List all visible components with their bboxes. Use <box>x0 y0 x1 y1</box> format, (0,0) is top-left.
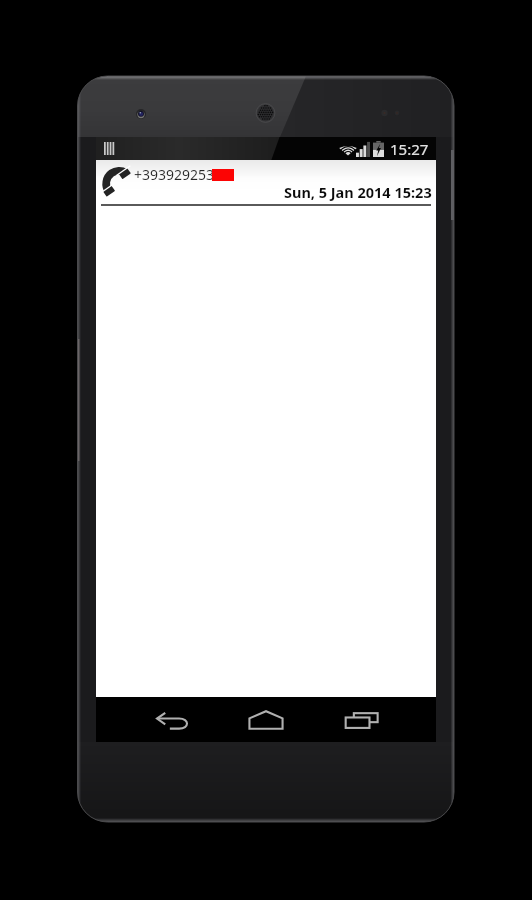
staticText: +393929253 <box>134 165 215 184</box>
button[interactable]: Home <box>230 697 302 742</box>
button[interactable]: Recents <box>333 697 405 742</box>
button[interactable]: Back <box>127 697 199 742</box>
staticText: Sun, 5 Jan 2014 15:23 <box>284 182 432 202</box>
button[interactable]: +393929253 <box>96 160 436 697</box>
staticText: 15:27 <box>390 139 429 159</box>
